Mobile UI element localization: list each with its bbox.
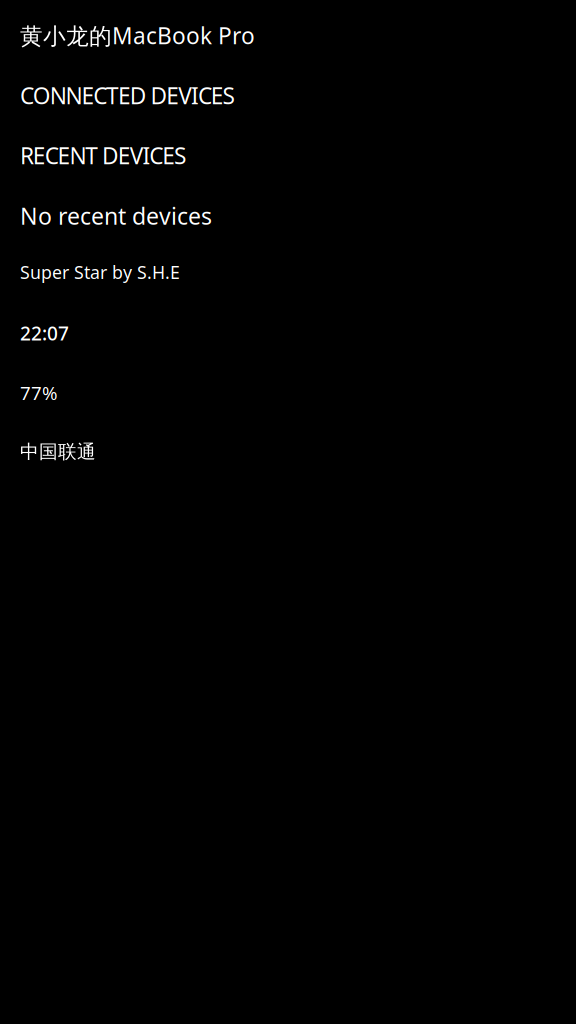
staticText: 22:07 xyxy=(20,320,69,346)
staticText: 黄小龙的MacBook Pro xyxy=(20,20,255,51)
staticText: CONNECTED DEVICES xyxy=(20,80,235,111)
staticText: Super Star by S.H.E xyxy=(20,260,180,284)
staticText: 77% xyxy=(20,380,58,405)
staticText: RECENT DEVICES xyxy=(20,140,186,171)
staticText: 中国联通 xyxy=(20,440,96,463)
staticText: No recent devices xyxy=(20,200,212,231)
